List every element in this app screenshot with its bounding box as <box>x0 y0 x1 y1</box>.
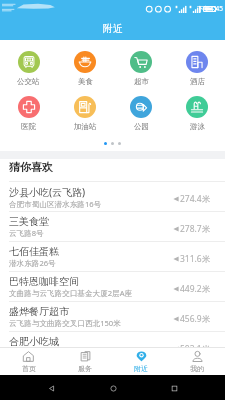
staticText: 服务 <box>78 364 92 373</box>
staticText: 游泳 <box>190 122 205 131</box>
staticText: 三美食堂 <box>9 215 49 228</box>
staticText: 公交站 <box>17 77 40 86</box>
button[interactable]: 沙县小吃(云飞路) <box>0 182 225 211</box>
button[interactable]: 公交站 <box>0 51 57 86</box>
staticText: 盛烨餐厅超市 <box>9 305 69 318</box>
button[interactable]: 附近 <box>113 348 169 375</box>
button[interactable]: 三美食堂 <box>0 212 225 241</box>
staticText: 公园 <box>134 122 149 131</box>
staticText: 猜你喜欢 <box>9 160 53 174</box>
button[interactable]: 游泳 <box>169 96 225 131</box>
staticText: 云飞路与文曲路交叉口西北150米 <box>9 318 121 328</box>
staticText: 449.2米 <box>180 283 211 295</box>
staticText: 医院 <box>21 122 36 131</box>
button[interactable]: 医院 <box>0 96 57 131</box>
button[interactable]: Back <box>41 378 61 398</box>
button[interactable]: 巴特恩咖啡空间 <box>0 272 225 301</box>
button[interactable]: 盛烨餐厅超市 <box>0 302 225 331</box>
staticText: 云飞路8号 <box>9 228 44 238</box>
staticText: 我的 <box>190 364 204 373</box>
staticText: 首页 <box>22 364 36 373</box>
staticText: 加油站 <box>74 122 97 131</box>
staticText: 附近 <box>134 364 148 373</box>
staticText: 下午4:45 <box>197 4 223 13</box>
staticText: 456.9米 <box>180 313 211 325</box>
button[interactable]: 我的 <box>169 348 225 375</box>
staticText: 潜水东路26号 <box>9 258 56 268</box>
button[interactable]: 公园 <box>113 96 169 131</box>
button[interactable]: 首页 <box>0 348 57 375</box>
button[interactable]: 七佰佳蛋糕 <box>0 242 225 271</box>
button[interactable]: Recents <box>164 378 184 398</box>
staticText: 274.4米 <box>180 193 211 205</box>
button[interactable]: 超市 <box>113 51 169 86</box>
button[interactable]: 美食 <box>57 51 113 86</box>
staticText: 合肥小吃城 <box>9 335 59 347</box>
staticText: 278.7米 <box>180 223 211 235</box>
button[interactable]: 服务 <box>57 348 113 375</box>
button[interactable]: 酒店 <box>169 51 225 86</box>
staticText: 七佰佳蛋糕 <box>9 245 59 258</box>
button[interactable]: 加油站 <box>57 96 113 131</box>
button[interactable]: Home <box>103 378 123 398</box>
staticText: 酒店 <box>190 77 205 86</box>
staticText: 311.6米 <box>180 253 211 265</box>
staticText: 合肥市蜀山区潜水东路16号 <box>9 199 102 209</box>
staticText: 附近 <box>103 22 123 35</box>
staticText: 502.1米 <box>180 343 211 347</box>
staticText: 沙县小吃(云飞路) <box>9 185 86 199</box>
staticText: 美食 <box>78 77 93 86</box>
staticText: 文曲路与云飞路交口基金大厦2层A座 <box>9 288 133 298</box>
button[interactable]: 合肥小吃城 <box>0 332 225 347</box>
staticText: 超市 <box>134 77 149 86</box>
staticText: 巴特恩咖啡空间 <box>9 275 79 288</box>
